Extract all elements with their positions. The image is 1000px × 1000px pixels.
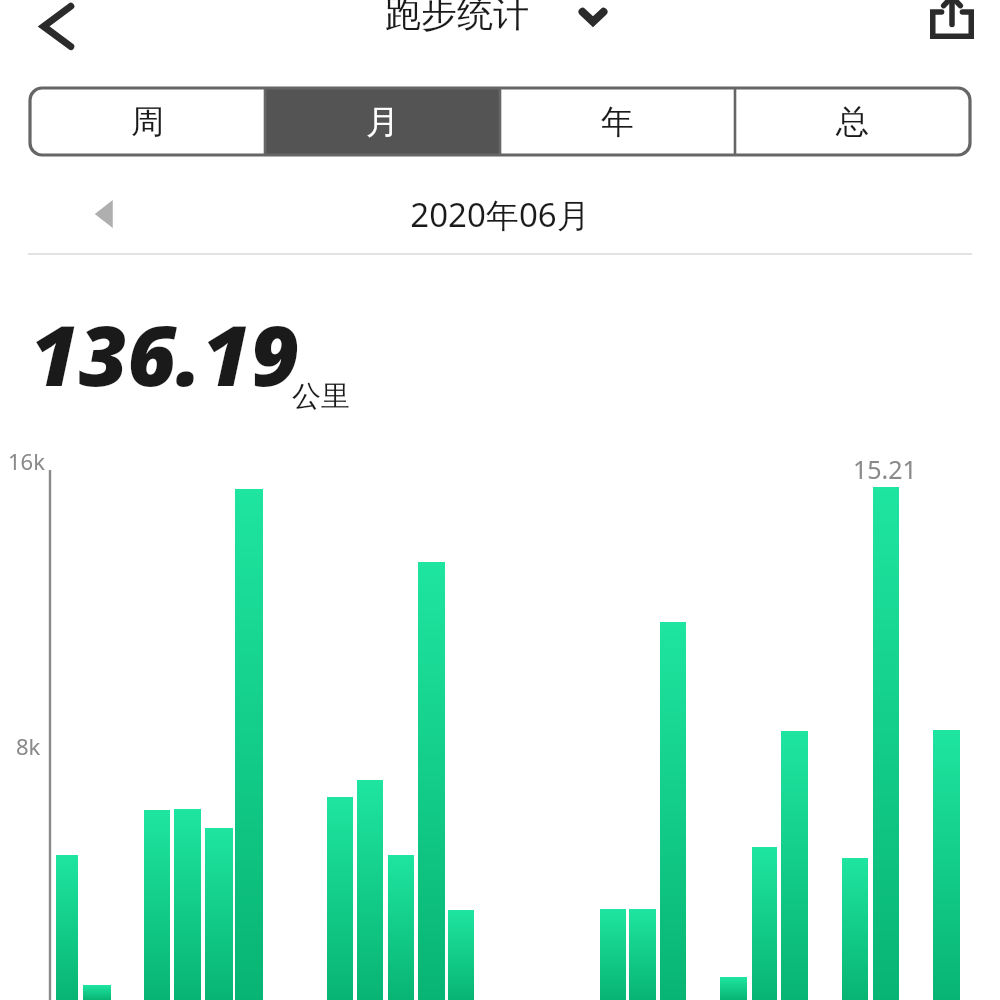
staticText: 跑步统计 (385, 0, 529, 36)
button[interactable]: 2020年06月 (330, 186, 670, 242)
staticText: 16k (8, 446, 45, 476)
staticText: 周 (131, 101, 164, 143)
staticText: 2020年06月 (410, 192, 590, 237)
staticText: 公里 (292, 378, 350, 415)
button[interactable]: Back (18, 0, 98, 48)
staticText: 8k (16, 731, 41, 761)
button[interactable]: More (578, 4, 608, 30)
button[interactable]: Share (926, 0, 978, 40)
button[interactable]: 跑步统计 (385, 0, 615, 36)
staticText: 月 (366, 101, 399, 143)
button[interactable]: 月 (265, 88, 500, 155)
button[interactable]: 总 (735, 88, 970, 155)
staticText: 总 (836, 101, 869, 143)
button[interactable]: 周 (30, 88, 265, 155)
staticText: 年 (601, 101, 634, 143)
staticText: 136.19 (30, 296, 300, 396)
staticText: 15.21 (853, 452, 917, 482)
button[interactable]: 年 (500, 88, 735, 155)
button[interactable]: Previous month (78, 186, 134, 242)
